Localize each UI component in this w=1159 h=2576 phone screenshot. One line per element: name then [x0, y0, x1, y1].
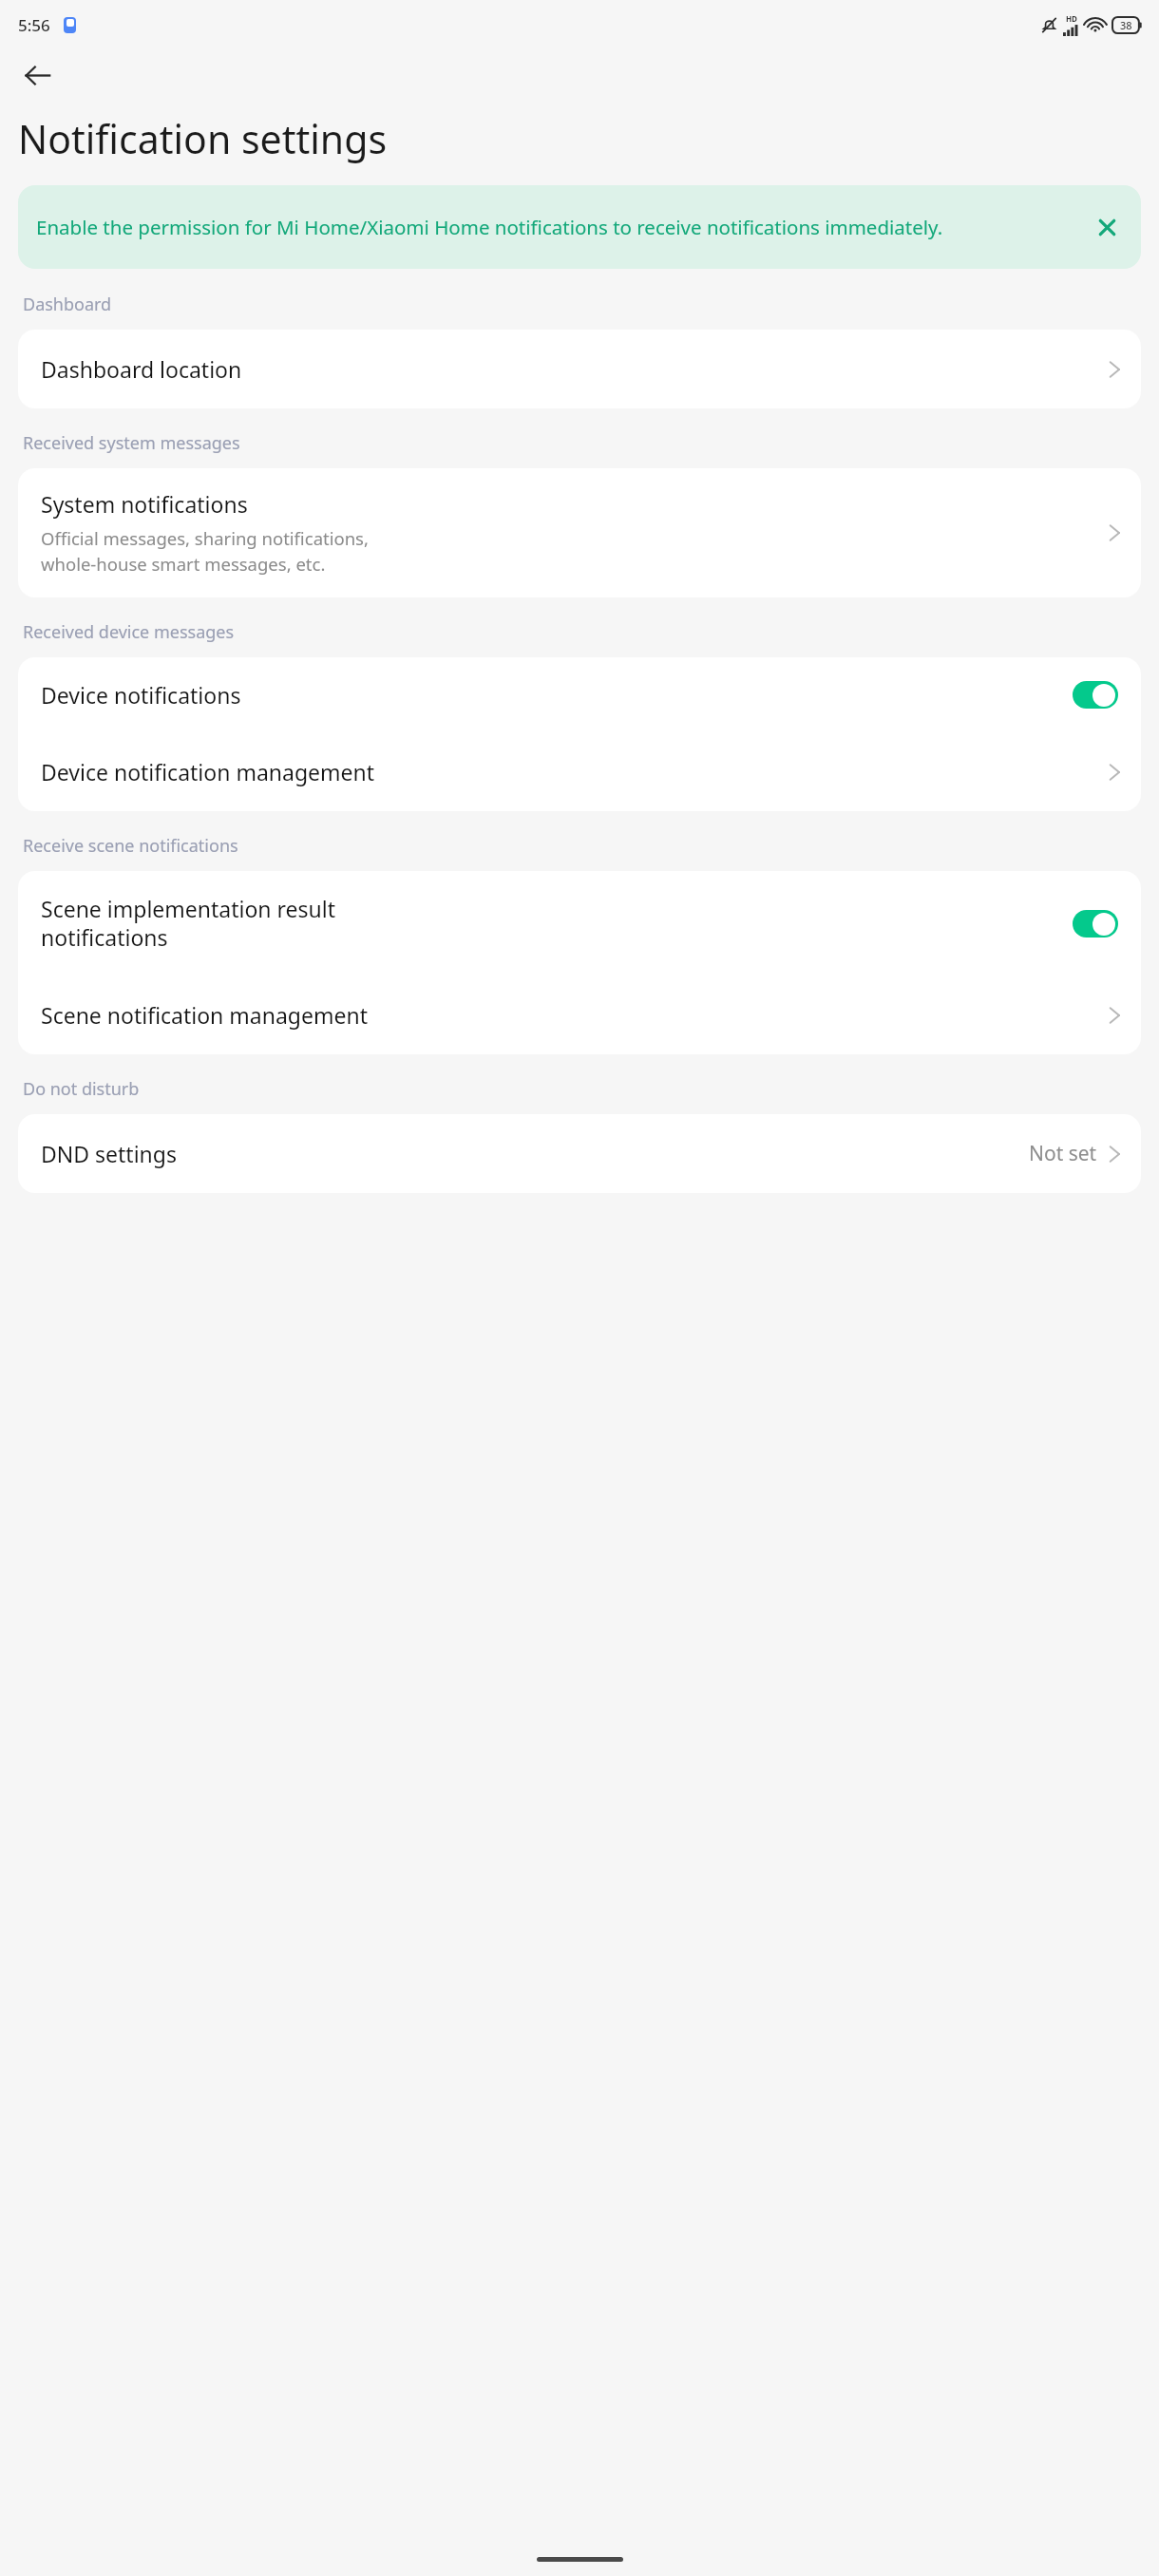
staticText: 5:56	[18, 14, 50, 36]
button[interactable]: Scene notification management	[18, 975, 1141, 1054]
button[interactable]: System notifications	[18, 468, 1141, 597]
staticText: Scene implementation result notification…	[41, 894, 1061, 953]
staticText: Notification settings	[18, 112, 388, 165]
staticText: Not set	[1029, 1140, 1097, 1167]
staticText: 38	[1120, 18, 1132, 32]
button[interactable]: Toggle on	[1073, 910, 1118, 938]
staticText: Dashboard	[23, 293, 112, 316]
staticText: Receive scene notifications	[23, 834, 238, 858]
button[interactable]: Dismiss	[1086, 206, 1128, 248]
staticText: Official messages, sharing notifications…	[41, 526, 369, 577]
staticText: HD	[1066, 13, 1077, 24]
staticText: Device notification management	[41, 757, 1108, 786]
button[interactable]: Device notifications	[18, 657, 1141, 732]
staticText: Do not disturb	[23, 1077, 140, 1101]
button[interactable]: Scene implementation result notification…	[18, 871, 1141, 975]
button[interactable]: Enable the permission for Mi Home/Xiaomi…	[18, 185, 1141, 269]
staticText: System notifications	[41, 489, 248, 519]
button[interactable]: Dashboard location	[18, 330, 1141, 408]
staticText: Enable the permission for Mi Home/Xiaomi…	[36, 214, 1086, 240]
staticText: Received system messages	[23, 431, 240, 455]
staticText: Scene notification management	[41, 1000, 1108, 1030]
button[interactable]: Back	[11, 49, 63, 101]
button[interactable]: Device notification management	[18, 732, 1141, 811]
staticText: Received device messages	[23, 620, 235, 644]
staticText: Dashboard location	[41, 354, 1108, 384]
staticText: DND settings	[41, 1139, 1029, 1168]
button[interactable]: DND settings	[18, 1114, 1141, 1193]
staticText: Device notifications	[41, 680, 1061, 710]
button[interactable]: Toggle on	[1073, 681, 1118, 709]
